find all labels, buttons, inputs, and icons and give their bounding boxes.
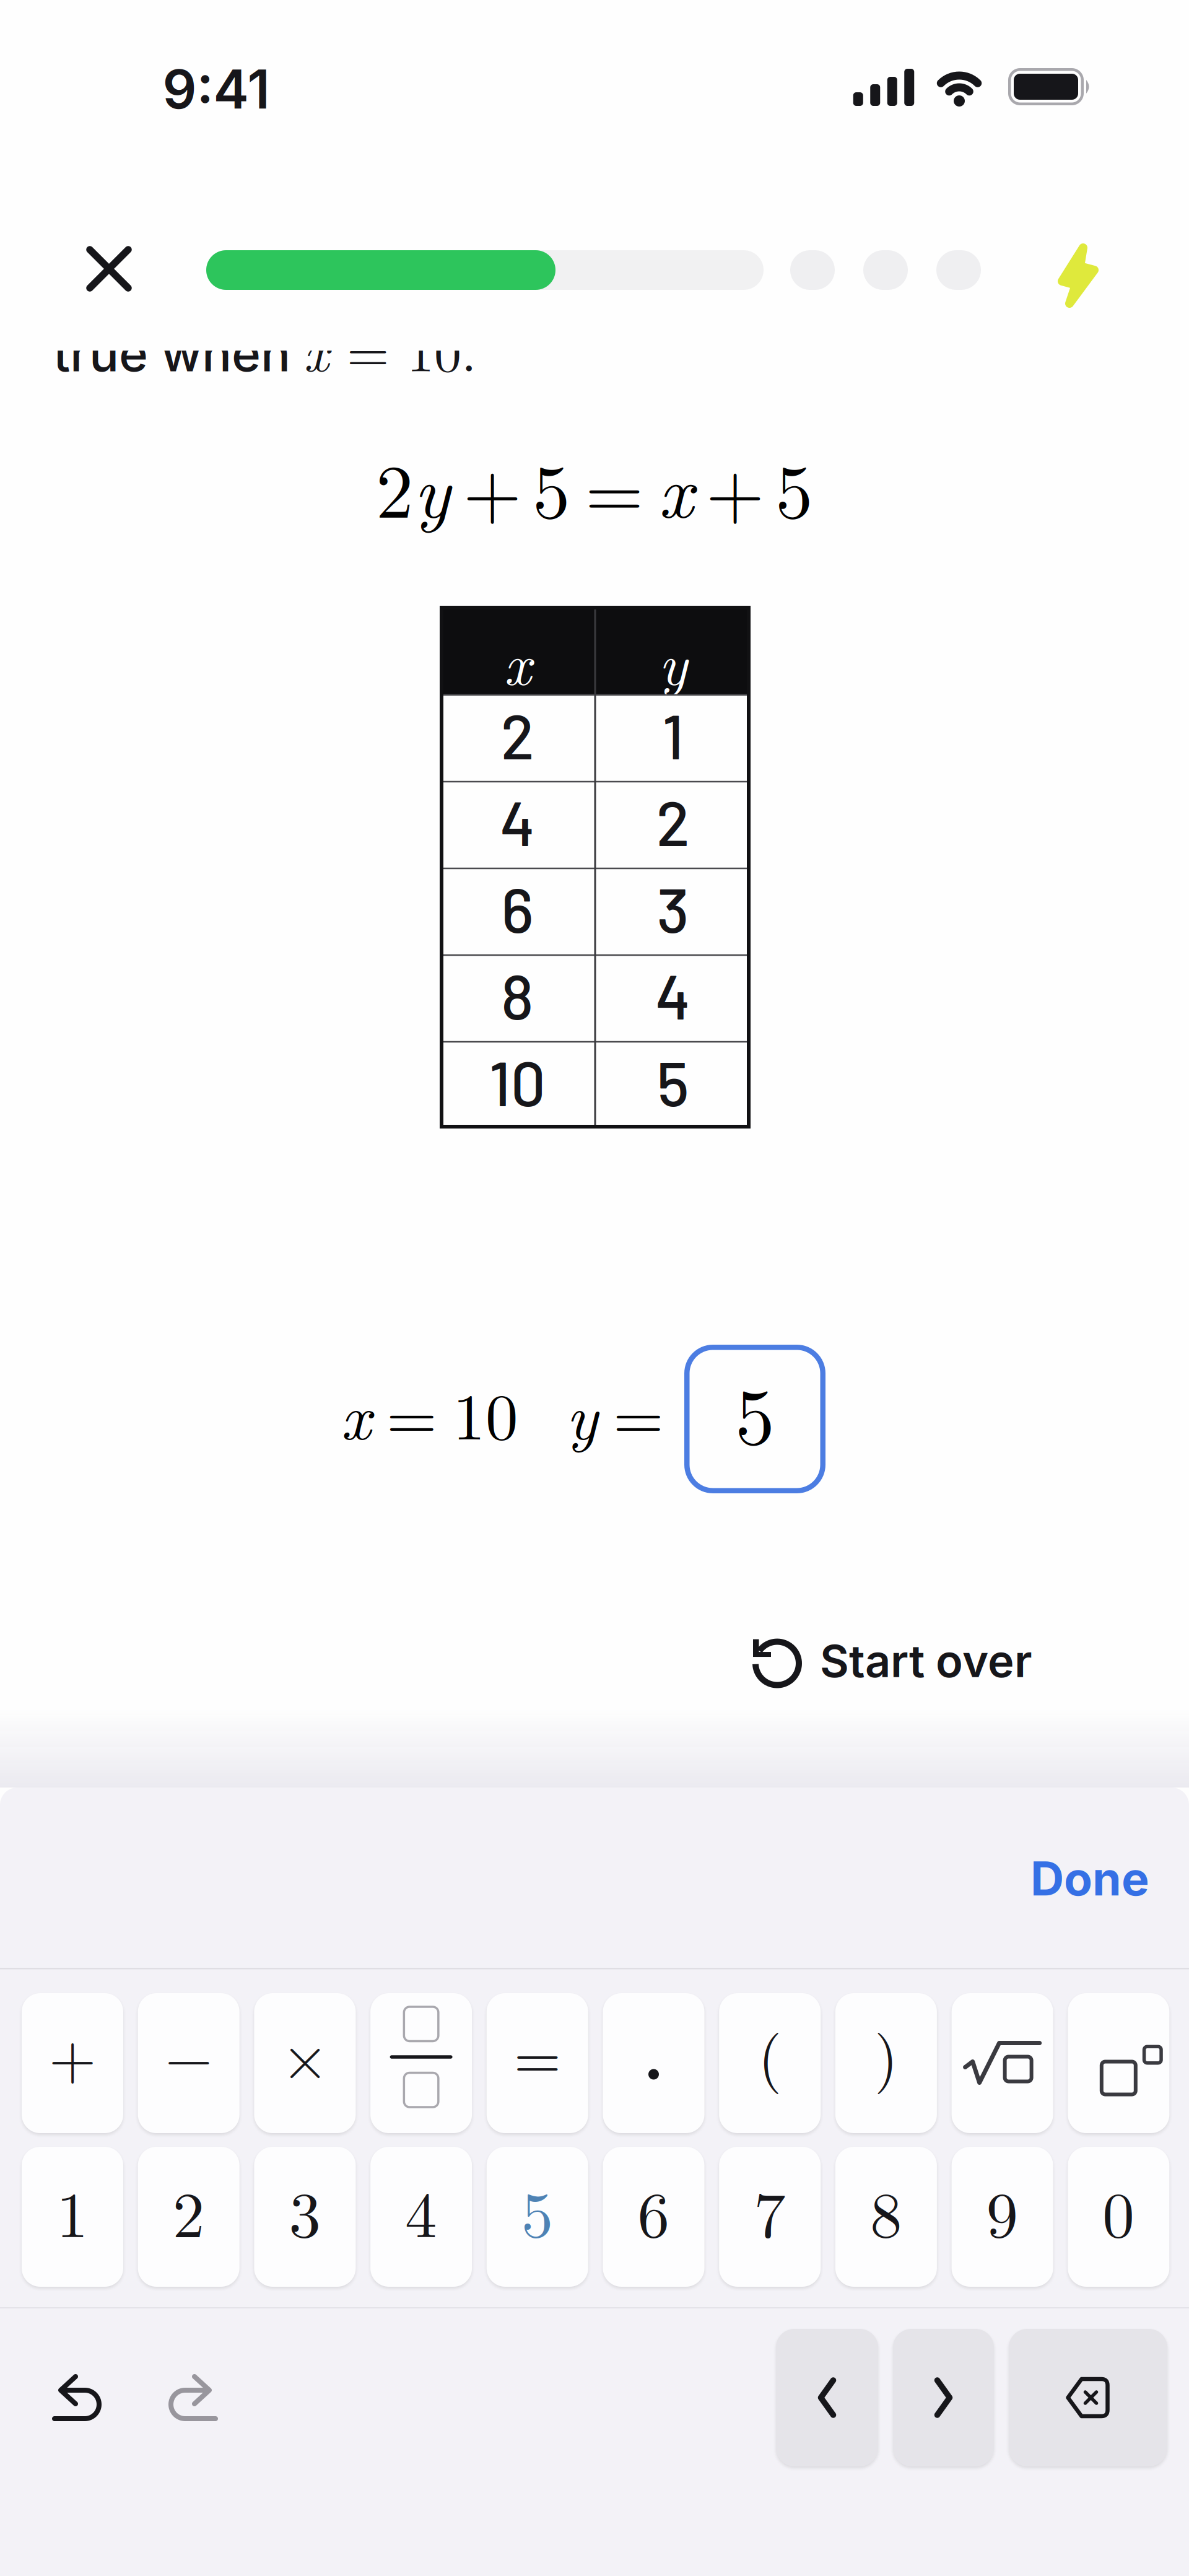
staticText: 9 [986, 2165, 1018, 2256]
staticText: 2y + 5 = x + 5 [376, 434, 813, 538]
staticText: 4 [655, 958, 690, 1032]
staticText: 10 [489, 1044, 546, 1119]
staticText: − [165, 2010, 212, 2096]
staticText: × [281, 2010, 328, 2096]
staticText: 5 [735, 1355, 775, 1467]
staticText: true when x = 10. [53, 311, 476, 386]
staticText: 4 [500, 784, 535, 858]
staticText: 6 [638, 2165, 670, 2256]
staticText: 7 [754, 2165, 786, 2256]
staticText: 0 [1102, 2165, 1135, 2256]
staticText: y [659, 619, 687, 702]
staticText: x = 10 [341, 1367, 518, 1457]
staticText: 1 [662, 697, 684, 772]
staticText: 5 [657, 1044, 689, 1119]
staticText: 2 [656, 784, 690, 858]
staticText: Start over [820, 1634, 1032, 1688]
staticText: y = [566, 1367, 664, 1457]
staticText: Done [1030, 1850, 1149, 1907]
staticText: 8 [501, 958, 534, 1032]
staticText: x [504, 619, 531, 702]
staticText: 1 [56, 2165, 89, 2256]
staticText: 3 [657, 871, 689, 945]
staticText: 5 [521, 2165, 554, 2256]
staticText: ) [874, 2010, 898, 2096]
staticText: 9:41 [163, 57, 270, 121]
staticText: 2 [501, 697, 534, 772]
staticText: 8 [870, 2165, 902, 2256]
staticText: = [514, 2010, 561, 2096]
staticText: 2 [173, 2165, 205, 2256]
staticText: + [49, 2010, 96, 2096]
staticText: 3 [289, 2165, 321, 2256]
staticText: ( [758, 2010, 782, 2096]
staticText: 6 [501, 871, 534, 945]
staticText: 4 [405, 2165, 437, 2256]
